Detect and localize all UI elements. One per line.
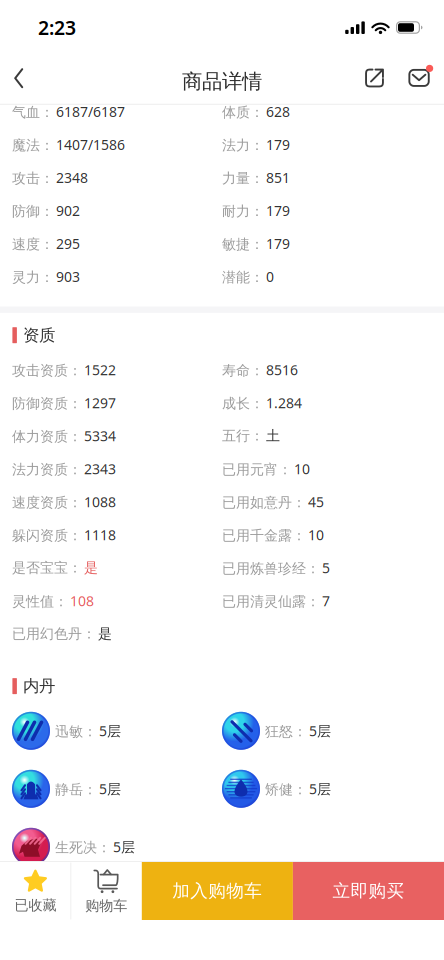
- staticText: 狂怒：: [265, 723, 307, 740]
- staticText: 已用幻色丹：: [12, 625, 96, 643]
- staticText: 攻击资质：: [12, 362, 82, 379]
- staticText: 0: [266, 267, 274, 286]
- staticText: 851: [266, 168, 290, 187]
- staticText: 1407/1586: [56, 135, 125, 154]
- staticText: 5层: [309, 721, 331, 740]
- staticText: 7: [322, 591, 330, 610]
- button[interactable]: 立即购买: [293, 862, 444, 920]
- staticText: 5: [322, 558, 330, 577]
- staticText: 1118: [84, 525, 116, 544]
- staticText: 已用如意丹：: [222, 494, 306, 511]
- staticText: 是否宝宝：: [12, 559, 82, 577]
- staticText: 防御：: [12, 202, 54, 220]
- staticText: 5层: [99, 721, 121, 740]
- staticText: 矫健：: [265, 781, 307, 798]
- staticText: 成长：: [222, 395, 264, 412]
- staticText: 179: [266, 135, 290, 154]
- button[interactable]: 购物车: [71, 862, 142, 920]
- staticText: 已用元宵：: [222, 461, 292, 478]
- staticText: 五行：: [222, 427, 264, 445]
- staticText: 商品详情: [182, 69, 262, 94]
- staticText: 法力：: [222, 136, 264, 154]
- staticText: 速度：: [12, 235, 54, 253]
- staticText: 体质：: [222, 103, 264, 121]
- staticText: 1297: [84, 393, 116, 412]
- button[interactable]: Messages: [408, 68, 444, 91]
- staticText: 6187/6187: [56, 102, 125, 121]
- staticText: 1088: [84, 492, 116, 511]
- staticText: 902: [56, 201, 80, 220]
- staticText: 气血：: [12, 103, 54, 121]
- staticText: 加入购物车: [172, 880, 262, 902]
- staticText: 2:23: [38, 14, 76, 41]
- staticText: 潜能：: [222, 268, 264, 286]
- staticText: 903: [56, 267, 80, 286]
- staticText: 5层: [113, 837, 135, 856]
- staticText: 体力资质：: [12, 428, 82, 445]
- staticText: 已用炼兽珍经：: [222, 560, 320, 577]
- staticText: 2348: [56, 168, 88, 187]
- staticText: 立即购买: [332, 880, 404, 902]
- button[interactable]: 加入购物车: [142, 862, 293, 920]
- staticText: 628: [266, 102, 290, 121]
- staticText: 已收藏: [14, 896, 56, 914]
- staticText: 是: [84, 559, 98, 577]
- staticText: 295: [56, 234, 80, 253]
- staticText: 迅敏：: [55, 723, 97, 740]
- staticText: 耐力：: [222, 202, 264, 220]
- staticText: 1.284: [266, 393, 302, 412]
- staticText: 5层: [309, 779, 331, 798]
- staticText: 躲闪资质：: [12, 527, 82, 544]
- staticText: 力量：: [222, 169, 264, 187]
- staticText: 生死决：: [55, 839, 111, 856]
- button[interactable]: 已收藏: [0, 862, 71, 920]
- staticText: 1522: [84, 360, 116, 379]
- staticText: 45: [308, 492, 324, 511]
- staticText: 防御资质：: [12, 395, 82, 412]
- staticText: 魔法：: [12, 136, 54, 154]
- staticText: 8516: [266, 360, 298, 379]
- staticText: 10: [294, 459, 310, 478]
- staticText: 10: [308, 525, 324, 544]
- staticText: 5层: [99, 779, 121, 798]
- staticText: 179: [266, 234, 290, 253]
- button[interactable]: Share: [365, 59, 384, 101]
- staticText: 购物车: [85, 897, 127, 915]
- staticText: 2343: [84, 459, 116, 478]
- staticText: 灵性值：: [12, 593, 68, 610]
- button[interactable]: Back: [0, 55, 38, 105]
- staticText: 已用千金露：: [222, 527, 306, 544]
- staticText: 攻击：: [12, 169, 54, 187]
- staticText: 敏捷：: [222, 235, 264, 253]
- staticText: 速度资质：: [12, 494, 82, 511]
- staticText: 静岳：: [55, 781, 97, 798]
- staticText: 179: [266, 201, 290, 220]
- staticText: 资质: [23, 325, 55, 346]
- staticText: 寿命：: [222, 362, 264, 379]
- staticText: 已用清灵仙露：: [222, 593, 320, 610]
- staticText: 法力资质：: [12, 461, 82, 478]
- staticText: 5334: [84, 426, 116, 445]
- staticText: 土: [266, 427, 280, 445]
- staticText: 灵力：: [12, 268, 54, 286]
- staticText: 108: [70, 591, 94, 610]
- staticText: 是: [98, 625, 112, 643]
- staticText: 内丹: [23, 676, 55, 696]
